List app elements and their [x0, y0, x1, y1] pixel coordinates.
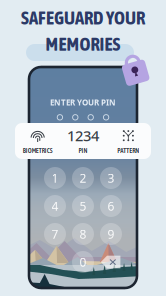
staticText: ENTER YOUR PIN: [50, 97, 116, 108]
button[interactable]: 8: [72, 223, 94, 245]
staticText: SAFEGUARD YOUR: [21, 7, 145, 28]
button[interactable]: BIOMETRICS: [15, 123, 60, 159]
staticText: 8: [79, 226, 86, 242]
button[interactable]: PATTERN: [106, 123, 151, 159]
staticText: PATTERN: [117, 147, 139, 154]
staticText: 5: [79, 198, 86, 214]
staticText: 0: [79, 254, 86, 270]
staticText: PIN: [78, 147, 87, 154]
staticText: 9: [107, 226, 114, 242]
staticText: 2: [79, 170, 86, 186]
staticText: 1: [51, 170, 58, 186]
button[interactable]: 6: [100, 195, 122, 217]
staticText: 7: [51, 226, 58, 242]
staticText: 4: [51, 198, 58, 214]
staticText: MEMORIES: [45, 33, 120, 55]
button[interactable]: 1: [44, 167, 66, 189]
button[interactable]: 5: [72, 195, 94, 217]
button[interactable]: 9: [100, 223, 122, 245]
button[interactable]: 4: [44, 195, 66, 217]
button[interactable]: 3: [100, 167, 122, 189]
staticText: 3: [107, 170, 114, 186]
button[interactable]: Delete: [100, 254, 122, 269]
staticText: 1234: [67, 126, 99, 145]
staticText: 6: [107, 198, 114, 214]
button[interactable]: 1234: [60, 123, 106, 159]
button[interactable]: 2: [72, 167, 94, 189]
button[interactable]: 0: [72, 251, 94, 273]
staticText: BIOMETRICS: [23, 147, 53, 154]
button[interactable]: 7: [44, 223, 66, 245]
